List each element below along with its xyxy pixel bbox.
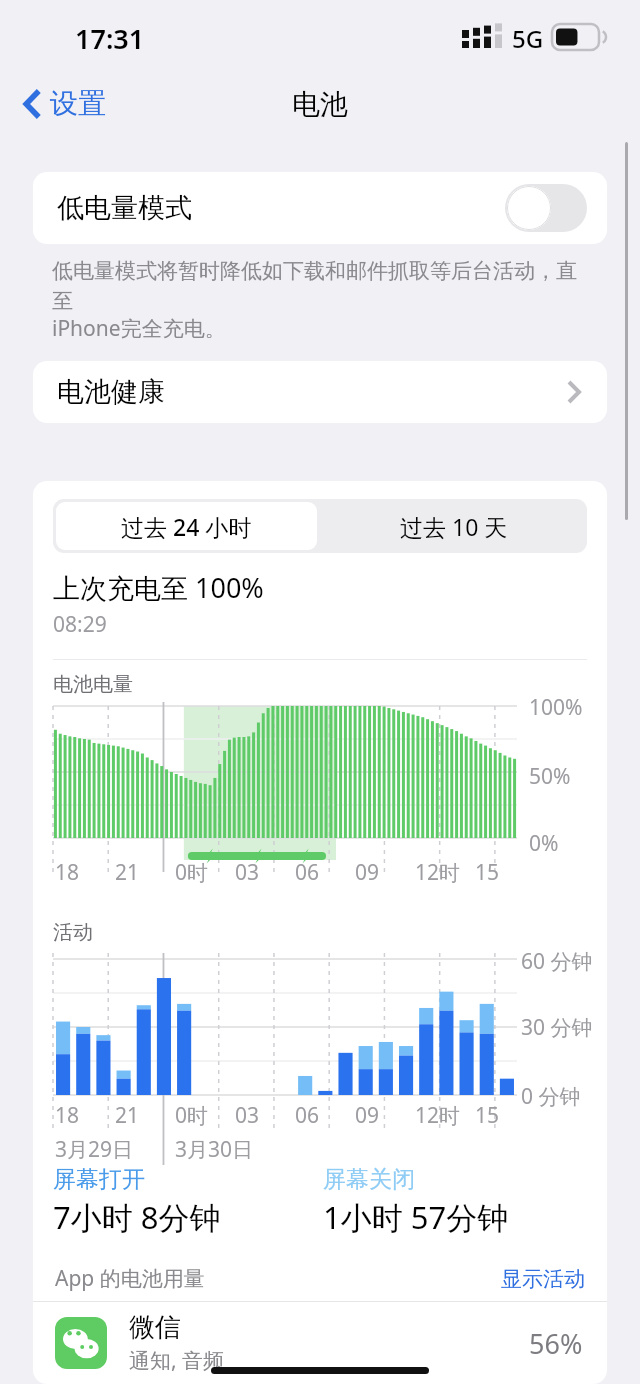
- button[interactable]: 设置: [18, 80, 112, 127]
- staticText: 21: [115, 858, 140, 887]
- staticText: 15: [475, 1101, 500, 1130]
- staticText: 过去 10 天: [400, 511, 508, 542]
- staticText: 60 分钟: [521, 947, 593, 976]
- staticText: 5G: [512, 22, 544, 55]
- staticText: 12时: [415, 1101, 461, 1130]
- staticText: 电池: [292, 87, 348, 122]
- staticText: 56%: [529, 1325, 583, 1362]
- button[interactable]: 显示活动: [501, 1266, 585, 1292]
- staticText: 0时: [175, 858, 209, 887]
- staticText: 过去 24 小时: [121, 511, 252, 542]
- button[interactable]: 低电量模式: [33, 172, 607, 244]
- button[interactable]: 电池健康: [33, 361, 607, 423]
- staticText: 1小时 57分钟: [323, 1196, 509, 1238]
- staticText: 09: [355, 858, 380, 887]
- staticText: 50%: [529, 762, 571, 791]
- button[interactable]: 过去 10 天: [320, 499, 587, 553]
- staticText: 17:31: [75, 20, 145, 57]
- staticText: 通知, 音频: [129, 1346, 225, 1375]
- button[interactable]: 过去 24 小时: [56, 502, 317, 550]
- staticText: 低电量模式: [57, 191, 192, 225]
- staticText: App 的电池用量: [55, 1264, 205, 1293]
- staticText: 09: [355, 1101, 380, 1130]
- staticText: 屏幕关闭: [323, 1165, 415, 1194]
- staticText: 低电量模式将暂时降低如下载和邮件抓取等后台活动，直至: [52, 258, 595, 314]
- staticText: 0时: [175, 1101, 209, 1130]
- staticText: 0%: [529, 829, 559, 858]
- staticText: 18: [55, 858, 80, 887]
- staticText: 显示活动: [501, 1266, 585, 1292]
- staticText: 设置: [50, 86, 106, 121]
- staticText: 7小时 8分钟: [53, 1196, 221, 1238]
- staticText: 3月29日: [55, 1135, 134, 1164]
- button[interactable]: 微信: [33, 1302, 607, 1384]
- staticText: 0 分钟: [521, 1082, 581, 1111]
- button[interactable]: 低电量模式开关: [505, 184, 587, 232]
- staticText: 18: [55, 1101, 80, 1130]
- staticText: 06: [295, 858, 320, 887]
- staticText: 30 分钟: [521, 1013, 593, 1042]
- staticText: 21: [115, 1101, 140, 1130]
- staticText: 3月30日: [175, 1135, 254, 1164]
- staticText: 03: [235, 858, 260, 887]
- staticText: 活动: [53, 920, 93, 945]
- staticText: 15: [475, 858, 500, 887]
- staticText: 上次充电至 100%: [53, 569, 264, 606]
- staticText: 微信: [129, 1311, 181, 1344]
- staticText: 06: [295, 1101, 320, 1130]
- staticText: 12时: [415, 858, 461, 887]
- staticText: 100%: [529, 693, 583, 722]
- staticText: 03: [235, 1101, 260, 1130]
- staticText: iPhone完全充电。: [52, 314, 226, 343]
- staticText: 08:29: [53, 610, 107, 639]
- staticText: 电池健康: [57, 375, 165, 409]
- staticText: 屏幕打开: [53, 1165, 145, 1194]
- staticText: 电池电量: [53, 672, 133, 697]
